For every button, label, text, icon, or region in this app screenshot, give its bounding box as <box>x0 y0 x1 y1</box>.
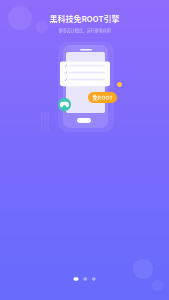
staticText: 黑科技免ROOT引擎 <box>49 13 119 24</box>
staticText: 更多设计模式，运行更多应用 <box>58 27 110 34</box>
staticText: 免ROOT <box>92 94 112 101</box>
